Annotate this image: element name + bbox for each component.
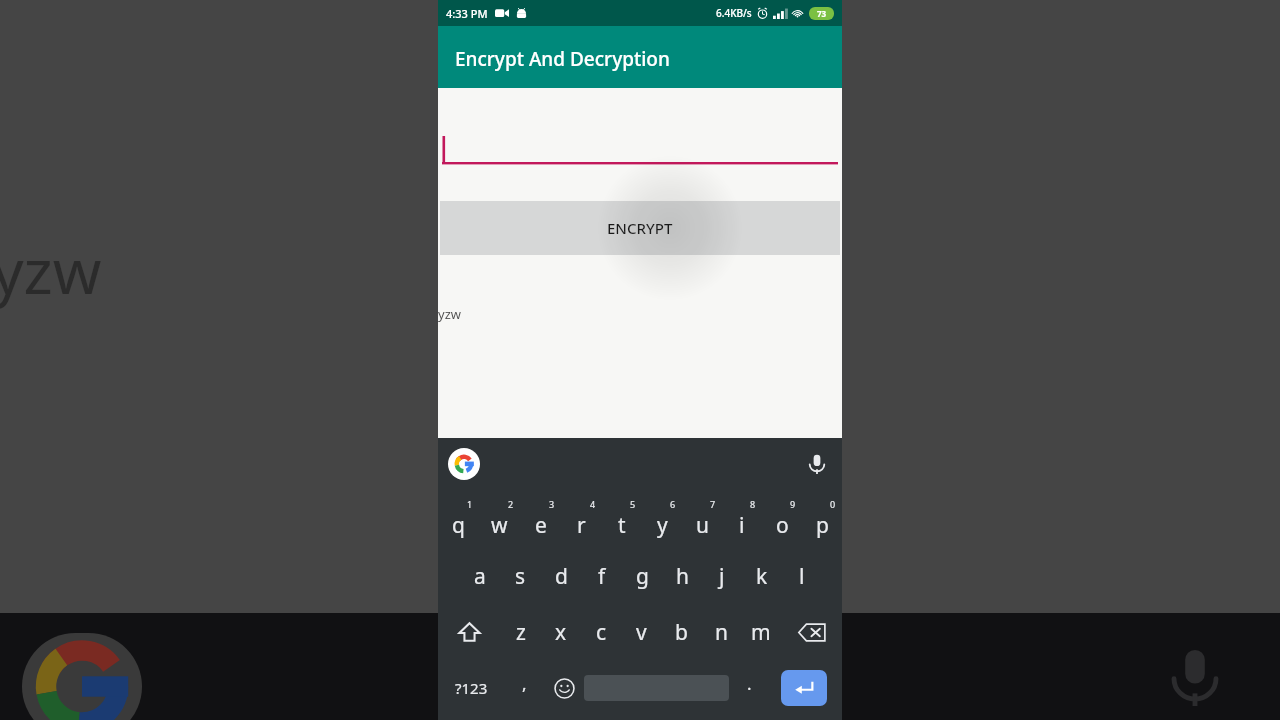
button[interactable]: d (541, 548, 582, 604)
button[interactable]: s (500, 548, 541, 604)
staticText: c (596, 618, 607, 647)
button[interactable]: c (581, 604, 621, 660)
button[interactable]: l (782, 548, 822, 604)
button[interactable]: Backspace (781, 604, 842, 660)
staticText: 6 (670, 498, 676, 510)
staticText: 1 (467, 498, 473, 510)
button[interactable]: Encrypt And Decryption (438, 26, 842, 88)
staticText: 8 (750, 498, 756, 510)
staticText: 73 (817, 8, 827, 19)
staticText: yzw (0, 228, 102, 312)
staticText: . (747, 672, 752, 695)
staticText: 9 (790, 498, 796, 510)
staticText: yzw (438, 305, 461, 323)
staticText: u (696, 511, 709, 540)
button[interactable]: 3 (520, 496, 561, 548)
staticText: 2 (508, 498, 514, 510)
button[interactable]: 8 (722, 496, 762, 548)
staticText: 7 (710, 498, 716, 510)
staticText: t (618, 511, 626, 540)
staticText: 0 (830, 498, 836, 510)
button[interactable]: Emoji (544, 660, 584, 716)
button[interactable]: Text input field (438, 88, 842, 253)
button[interactable]: Voice input (804, 451, 830, 477)
staticText: a (474, 562, 486, 591)
staticText: 5 (630, 498, 636, 510)
button[interactable]: ?123 (438, 660, 504, 716)
button[interactable]: 7 (682, 496, 722, 548)
button[interactable]: Enter (781, 670, 827, 706)
staticText: i (739, 511, 745, 540)
staticText: q (452, 511, 465, 540)
button[interactable]: h (662, 548, 702, 604)
button[interactable]: z (500, 604, 541, 660)
staticText: Encrypt And Decryption (455, 46, 670, 72)
button[interactable]: g (622, 548, 662, 604)
staticText: l (799, 562, 805, 591)
staticText: j (719, 562, 725, 591)
staticText: p (816, 511, 829, 540)
staticText: x (555, 618, 567, 647)
button[interactable]: 1 (438, 496, 479, 548)
staticText: ?123 (455, 678, 488, 698)
staticText: v (636, 618, 647, 647)
button[interactable]: k (742, 548, 782, 604)
button[interactable]: b (661, 604, 701, 660)
staticText: 4 (590, 498, 596, 510)
staticText: 6.4KB/s (716, 6, 752, 20)
staticText: ENCRYPT (607, 218, 673, 238)
button[interactable]: 5 (602, 496, 642, 548)
button[interactable]: , (504, 660, 544, 716)
staticText: e (535, 511, 547, 540)
staticText: s (515, 562, 526, 591)
button[interactable]: 9 (762, 496, 802, 548)
staticText: m (751, 618, 771, 647)
staticText: f (598, 562, 606, 591)
button[interactable]: n (701, 604, 741, 660)
staticText: h (676, 562, 689, 591)
button[interactable]: 4 (561, 496, 602, 548)
button[interactable]: f (582, 548, 622, 604)
staticText: 4:33 PM (446, 6, 488, 21)
button[interactable]: Shift (438, 604, 500, 660)
button[interactable]: ENCRYPT (440, 201, 840, 255)
staticText: 3 (549, 498, 555, 510)
button[interactable]: 0 (802, 496, 842, 548)
staticText: r (577, 511, 586, 540)
button[interactable]: m (741, 604, 781, 660)
staticText: y (657, 511, 668, 540)
button[interactable]: a (459, 548, 500, 604)
staticText: k (756, 562, 768, 591)
staticText: n (715, 618, 728, 647)
button[interactable]: j (702, 548, 742, 604)
button[interactable]: Google search (448, 448, 480, 480)
staticText: , (522, 672, 527, 695)
button[interactable]: x (541, 604, 581, 660)
staticText: z (516, 618, 526, 647)
button[interactable]: . (729, 660, 769, 716)
staticText: d (555, 562, 568, 591)
staticText: w (491, 511, 508, 540)
staticText: b (675, 618, 688, 647)
button[interactable]: 2 (479, 496, 520, 548)
button[interactable]: 6 (642, 496, 682, 548)
staticText: g (636, 562, 649, 591)
staticText: o (776, 511, 789, 540)
button[interactable]: v (621, 604, 661, 660)
